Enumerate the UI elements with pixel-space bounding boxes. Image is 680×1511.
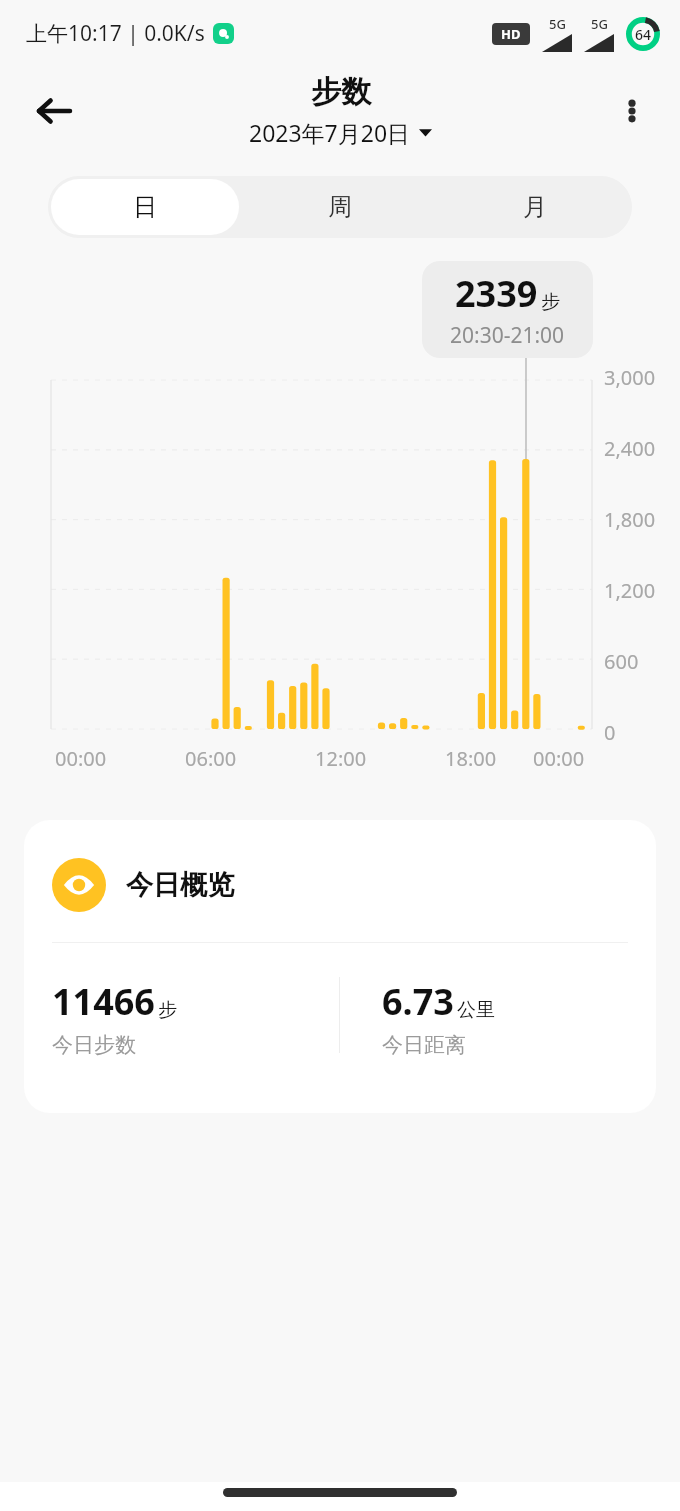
staticText: 今日步数: [52, 1032, 136, 1058]
staticText: 0: [604, 719, 616, 746]
staticText: 今日概览: [126, 868, 234, 902]
staticText: 1,800: [604, 506, 656, 533]
staticText: 5G: [549, 15, 566, 33]
staticText: HD: [501, 25, 521, 43]
staticText: 11466: [52, 977, 155, 1026]
staticText: 步数: [311, 73, 371, 111]
staticText: 20:30-21:00: [450, 321, 565, 350]
staticText: 日: [133, 192, 157, 222]
staticText: 步: [541, 290, 560, 314]
button[interactable]: Back: [26, 83, 82, 139]
button[interactable]: 月: [440, 179, 629, 235]
staticText: 今日距离: [382, 1032, 466, 1058]
staticText: 2,400: [604, 435, 656, 462]
staticText: 5G: [591, 15, 608, 33]
staticText: 18:00: [445, 745, 497, 772]
button[interactable]: 周: [245, 179, 434, 235]
staticText: 1,200: [604, 577, 656, 604]
staticText: 600: [604, 648, 639, 675]
button[interactable]: 2023年7月20日: [245, 115, 436, 150]
staticText: 6.73: [382, 977, 454, 1026]
staticText: 12:00: [315, 745, 367, 772]
staticText: 步: [158, 998, 177, 1022]
staticText: 周: [328, 192, 352, 222]
button[interactable]: 日: [51, 179, 239, 235]
staticText: 2023年7月20日: [249, 117, 411, 148]
staticText: 公里: [457, 998, 495, 1022]
staticText: 64: [635, 25, 652, 44]
staticText: 2339: [455, 269, 538, 318]
staticText: 月: [523, 192, 547, 222]
staticText: 00:00: [533, 745, 585, 772]
staticText: 00:00: [55, 745, 107, 772]
staticText: 06:00: [185, 745, 237, 772]
staticText: 3,000: [604, 364, 656, 391]
button[interactable]: More options: [604, 83, 660, 139]
button[interactable]: 今日概览: [24, 820, 656, 1113]
staticText: 上午10:17 | 0.0K/s: [26, 19, 205, 48]
